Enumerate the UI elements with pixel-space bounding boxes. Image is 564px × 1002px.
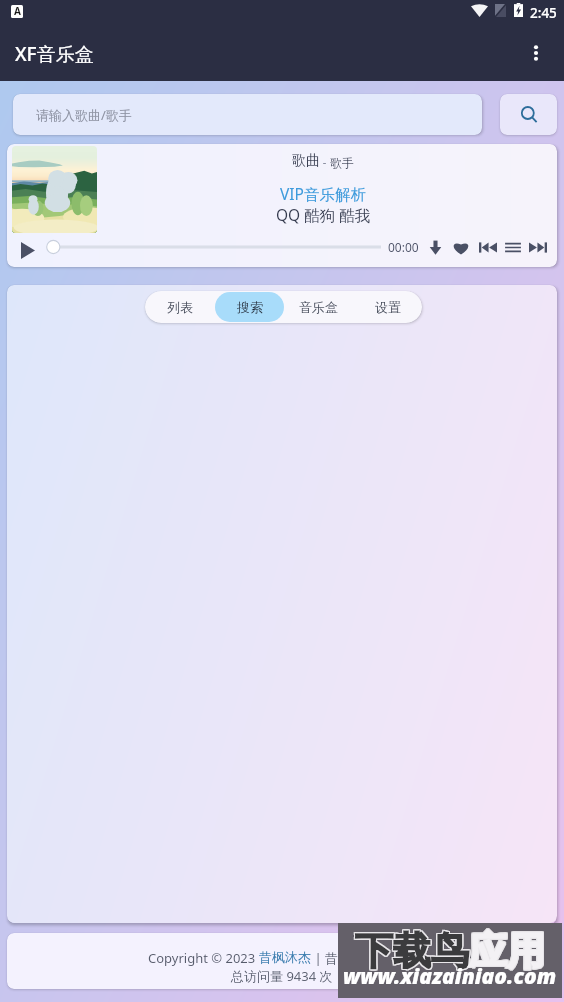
button[interactable]: 请输入歌曲/歌手 [13, 94, 482, 135]
staticText: 应用 [468, 928, 544, 976]
staticText: 歌曲 [292, 152, 320, 170]
staticText: 下载鸟 [356, 926, 470, 974]
staticText: 下载鸟 [356, 927, 470, 975]
staticText: XF音乐盒 [15, 41, 94, 67]
button[interactable]: Previous [479, 238, 497, 256]
button[interactable]: Playlist [504, 238, 522, 256]
button[interactable]: Seek bar [44, 239, 381, 255]
staticText: 下载鸟 [355, 928, 469, 976]
button[interactable]: Play [15, 238, 40, 263]
staticText: 下载鸟 [355, 926, 469, 974]
staticText: 应用 [468, 927, 544, 975]
staticText: 下载鸟 [355, 927, 469, 975]
staticText: 歌手 [330, 155, 354, 170]
button[interactable]: Search [500, 94, 557, 135]
button[interactable]: VIP音乐解析 [280, 183, 366, 204]
button[interactable]: 列表 [145, 292, 215, 322]
staticText: 应用 [470, 927, 546, 975]
staticText: 应用 [470, 926, 546, 974]
staticText: 应用 [469, 926, 545, 974]
staticText: 应用 [470, 928, 546, 976]
staticText: 应用 [469, 927, 545, 975]
staticText: 应用 [468, 926, 544, 974]
other: No SIM [495, 4, 506, 17]
button[interactable]: More options [512, 32, 560, 80]
staticText: 音乐盒 [299, 299, 338, 315]
staticText: 00:00 [388, 239, 419, 255]
staticText: 请输入歌曲/歌手 [36, 106, 132, 124]
staticText: - [320, 154, 330, 169]
staticText: A [14, 5, 21, 17]
staticText: 总访问量 9434 次 [231, 967, 333, 985]
staticText: QQ 酷狗 酷我 [276, 204, 371, 225]
other: Battery charging [514, 3, 523, 17]
button[interactable]: 音乐盒 [284, 292, 353, 322]
staticText: 设置 [375, 299, 401, 315]
staticText: 应用 [469, 928, 545, 976]
button[interactable]: 设置 [353, 292, 422, 322]
button[interactable]: Favorite [452, 238, 470, 256]
staticText: Copyright © 2023 [148, 949, 259, 967]
button[interactable]: Download [427, 238, 444, 256]
button[interactable]: 昔枫沐杰 [259, 949, 311, 965]
button[interactable]: 搜索 [215, 292, 284, 322]
staticText: 列表 [167, 299, 193, 315]
staticText: 下载鸟 [354, 927, 468, 975]
staticText: 下载鸟 [354, 926, 468, 974]
staticText: 下载鸟 [354, 928, 468, 976]
staticText: 下载鸟 [356, 928, 470, 976]
staticText: 2:45 [530, 4, 557, 22]
staticText: 搜索 [237, 299, 263, 315]
staticText: www.xiazainiao.com [343, 962, 557, 991]
button[interactable]: Next [529, 238, 547, 256]
other: Wi-Fi [471, 5, 488, 17]
staticText: | 昔枫音乐盒出品 [311, 949, 416, 967]
